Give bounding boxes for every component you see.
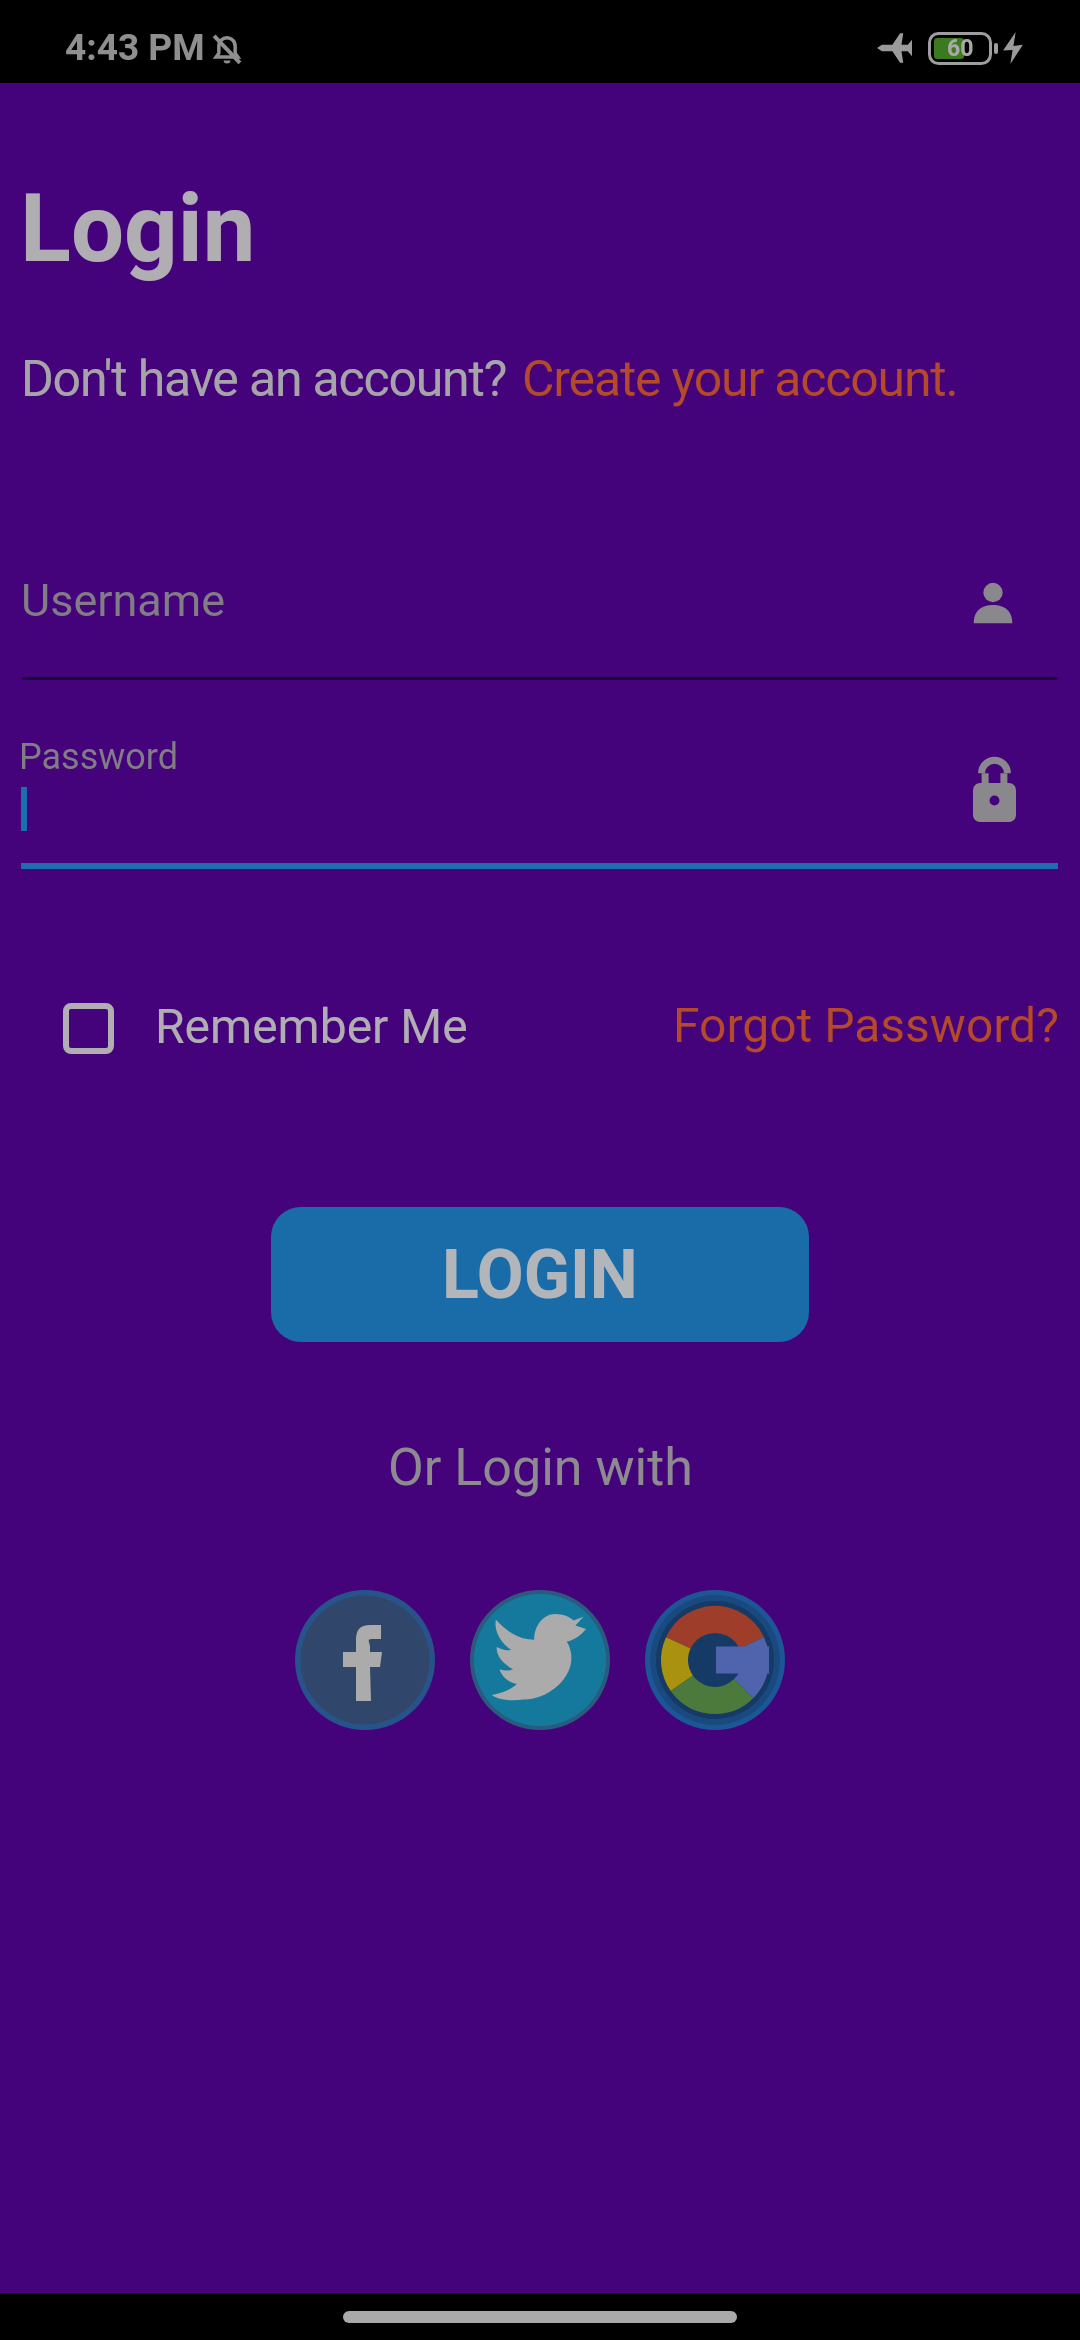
staticText: Remember Me [155, 998, 468, 1054]
button[interactable]: Create your account. [522, 350, 958, 409]
button[interactable]: Forgot Password? [673, 997, 1059, 1053]
staticText: LOGIN [442, 1235, 638, 1315]
button[interactable] [645, 1590, 785, 1730]
staticText: Password [19, 736, 179, 778]
staticText: 4:43 PM [65, 26, 205, 69]
button[interactable]: LOGIN [271, 1207, 809, 1342]
staticText: Login [20, 174, 256, 284]
button[interactable] [470, 1590, 610, 1730]
staticText: 60 [947, 35, 974, 62]
button[interactable]: Remember Me [42, 985, 468, 1054]
button[interactable] [295, 1590, 435, 1730]
staticText: Don't have an account? [21, 350, 507, 409]
staticText: Or Login with [388, 1437, 693, 1498]
staticText: Username [21, 574, 226, 627]
